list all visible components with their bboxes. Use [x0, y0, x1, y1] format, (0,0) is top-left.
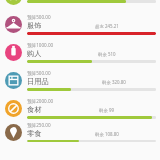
button[interactable]: Personal care category [0, 38, 160, 66]
staticText: 购人 [27, 49, 42, 58]
staticText: 食材 [27, 105, 42, 114]
staticText: 剩余 320.80 [102, 79, 126, 85]
staticText: 超支 245.21 [95, 23, 119, 29]
staticText: 剩余 108.80 [95, 131, 119, 137]
other: Snacks category [5, 124, 22, 141]
staticText: 预算1000.00 [27, 42, 54, 48]
other: Personal care category [5, 44, 22, 61]
staticText: 日用品 [27, 77, 49, 86]
staticText: 预算500.00 [27, 14, 51, 20]
staticText: 预算500.00 [27, 70, 51, 76]
staticText: 剩余 99 [99, 107, 114, 113]
button[interactable]: Daily goods category [0, 66, 160, 94]
staticText: 零食 [27, 129, 42, 138]
other: Transport category [5, 0, 22, 5]
other: Groceries category [5, 100, 22, 117]
button[interactable]: Clothing category [0, 10, 160, 38]
staticText: 剩余 510 [98, 51, 116, 57]
other: Clothing category [5, 16, 22, 33]
button[interactable]: Transport category [0, 0, 160, 10]
staticText: 服饰 [27, 21, 42, 30]
staticText: 预算2000.00 [27, 98, 54, 104]
other: Daily goods category [5, 72, 22, 89]
button[interactable]: Groceries category [0, 94, 160, 122]
staticText: 预算250.00 [27, 122, 51, 128]
button[interactable]: Snacks category [0, 122, 160, 142]
